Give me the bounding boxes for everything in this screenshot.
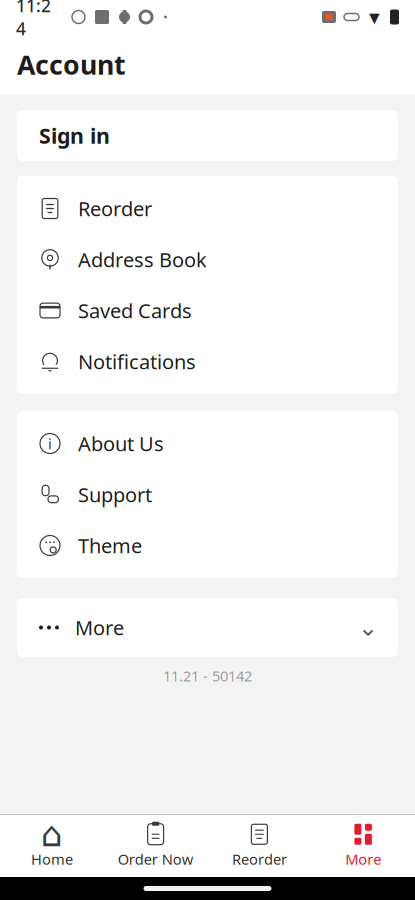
staticText: Notifications [78, 348, 196, 375]
staticText: Support [78, 481, 152, 508]
staticText: ▾ [369, 5, 380, 29]
staticText: More [345, 849, 381, 869]
button[interactable]: Notifications [17, 336, 398, 387]
staticText: Theme [78, 532, 142, 559]
staticText: Order Now [118, 849, 194, 869]
button[interactable]: Address Book [17, 234, 398, 285]
button[interactable]: i [17, 418, 398, 469]
staticText: Reorder [78, 195, 152, 222]
staticText: ⌂ [41, 815, 63, 854]
staticText: Address Book [78, 246, 207, 273]
staticText: About Us [78, 430, 164, 457]
staticText: i [48, 434, 52, 453]
staticText: Sign in [39, 121, 110, 150]
staticText: 11:24 [16, 0, 51, 40]
staticText: More [75, 614, 124, 641]
button[interactable]: ⌂ [0, 815, 104, 877]
staticText: 11.21 - 50142 [163, 666, 252, 685]
button[interactable]: Sign in [17, 110, 398, 161]
staticText: Account [17, 47, 126, 82]
button[interactable]: More [17, 598, 398, 657]
staticText: Reorder [232, 849, 287, 869]
button[interactable]: More [311, 815, 415, 877]
staticText: Home [31, 849, 73, 869]
button[interactable]: Reorder [17, 183, 398, 234]
staticText: Saved Cards [78, 297, 192, 324]
button[interactable]: Theme [17, 520, 398, 571]
button[interactable]: Order Now [104, 815, 208, 877]
button[interactable]: Reorder [207, 815, 311, 877]
button[interactable]: Support [17, 469, 398, 520]
staticText: ⌄ [358, 614, 378, 641]
button[interactable]: Saved Cards [17, 285, 398, 336]
